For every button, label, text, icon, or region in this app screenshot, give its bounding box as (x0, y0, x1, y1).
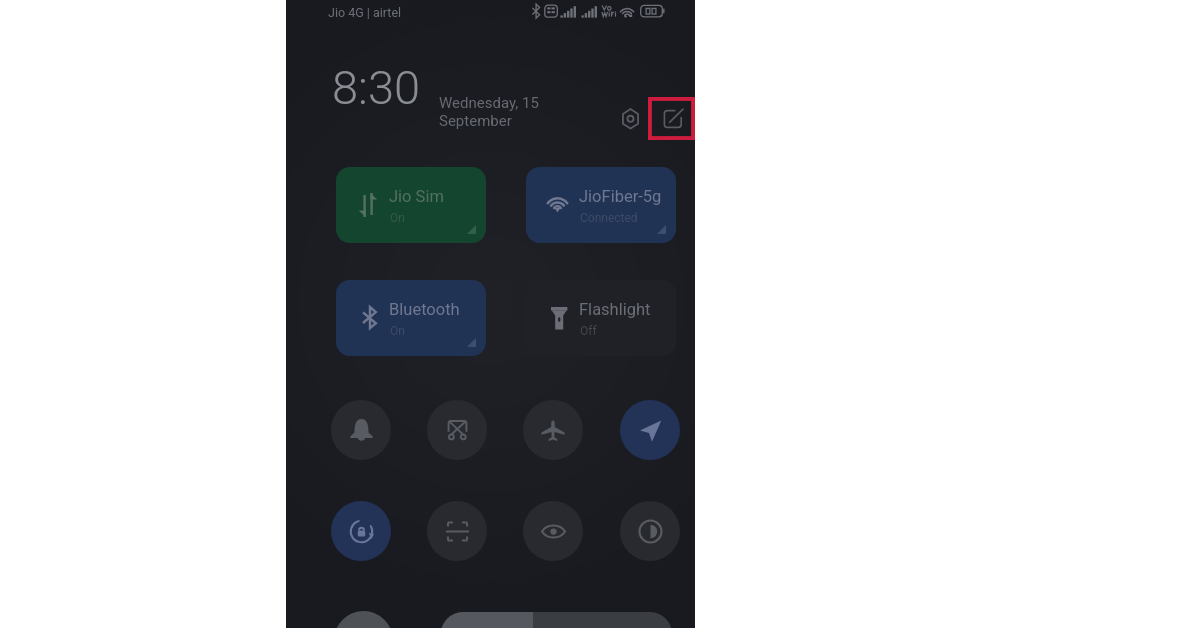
staticText: Jio Sim (389, 187, 444, 206)
button[interactable]: Jio Sim (336, 167, 486, 243)
staticText: Off (580, 324, 597, 338)
staticText: JioFiber-5g (579, 187, 662, 206)
staticText: On (390, 211, 405, 225)
button[interactable]: JioFiber-5g (526, 167, 676, 243)
button[interactable]: Cast (427, 400, 487, 460)
button[interactable]: Location (620, 400, 680, 460)
staticText: Connected (580, 211, 638, 225)
button[interactable]: Flashlight (526, 280, 676, 356)
button[interactable]: Settings (616, 105, 644, 133)
button[interactable]: Scan QR code (427, 501, 487, 561)
button[interactable]: Airplane mode (523, 400, 583, 460)
staticText: 8:30 (332, 60, 421, 115)
staticText: Wednesday, 15 September (439, 94, 539, 130)
button[interactable]: Bluetooth (336, 280, 486, 356)
button[interactable]: Brightness (441, 612, 672, 628)
button[interactable]: Dark mode (620, 501, 680, 561)
staticText: Jio 4G | airtel (328, 5, 402, 20)
button[interactable]: Edit (658, 104, 686, 132)
staticText: On (390, 324, 405, 338)
button[interactable]: Do not disturb (331, 400, 391, 460)
staticText: Flashlight (579, 300, 651, 319)
button[interactable]: Auto brightness (334, 611, 393, 628)
staticText: Bluetooth (389, 300, 460, 319)
button[interactable]: Auto rotate lock (331, 501, 391, 561)
button[interactable]: Reading mode (523, 501, 583, 561)
